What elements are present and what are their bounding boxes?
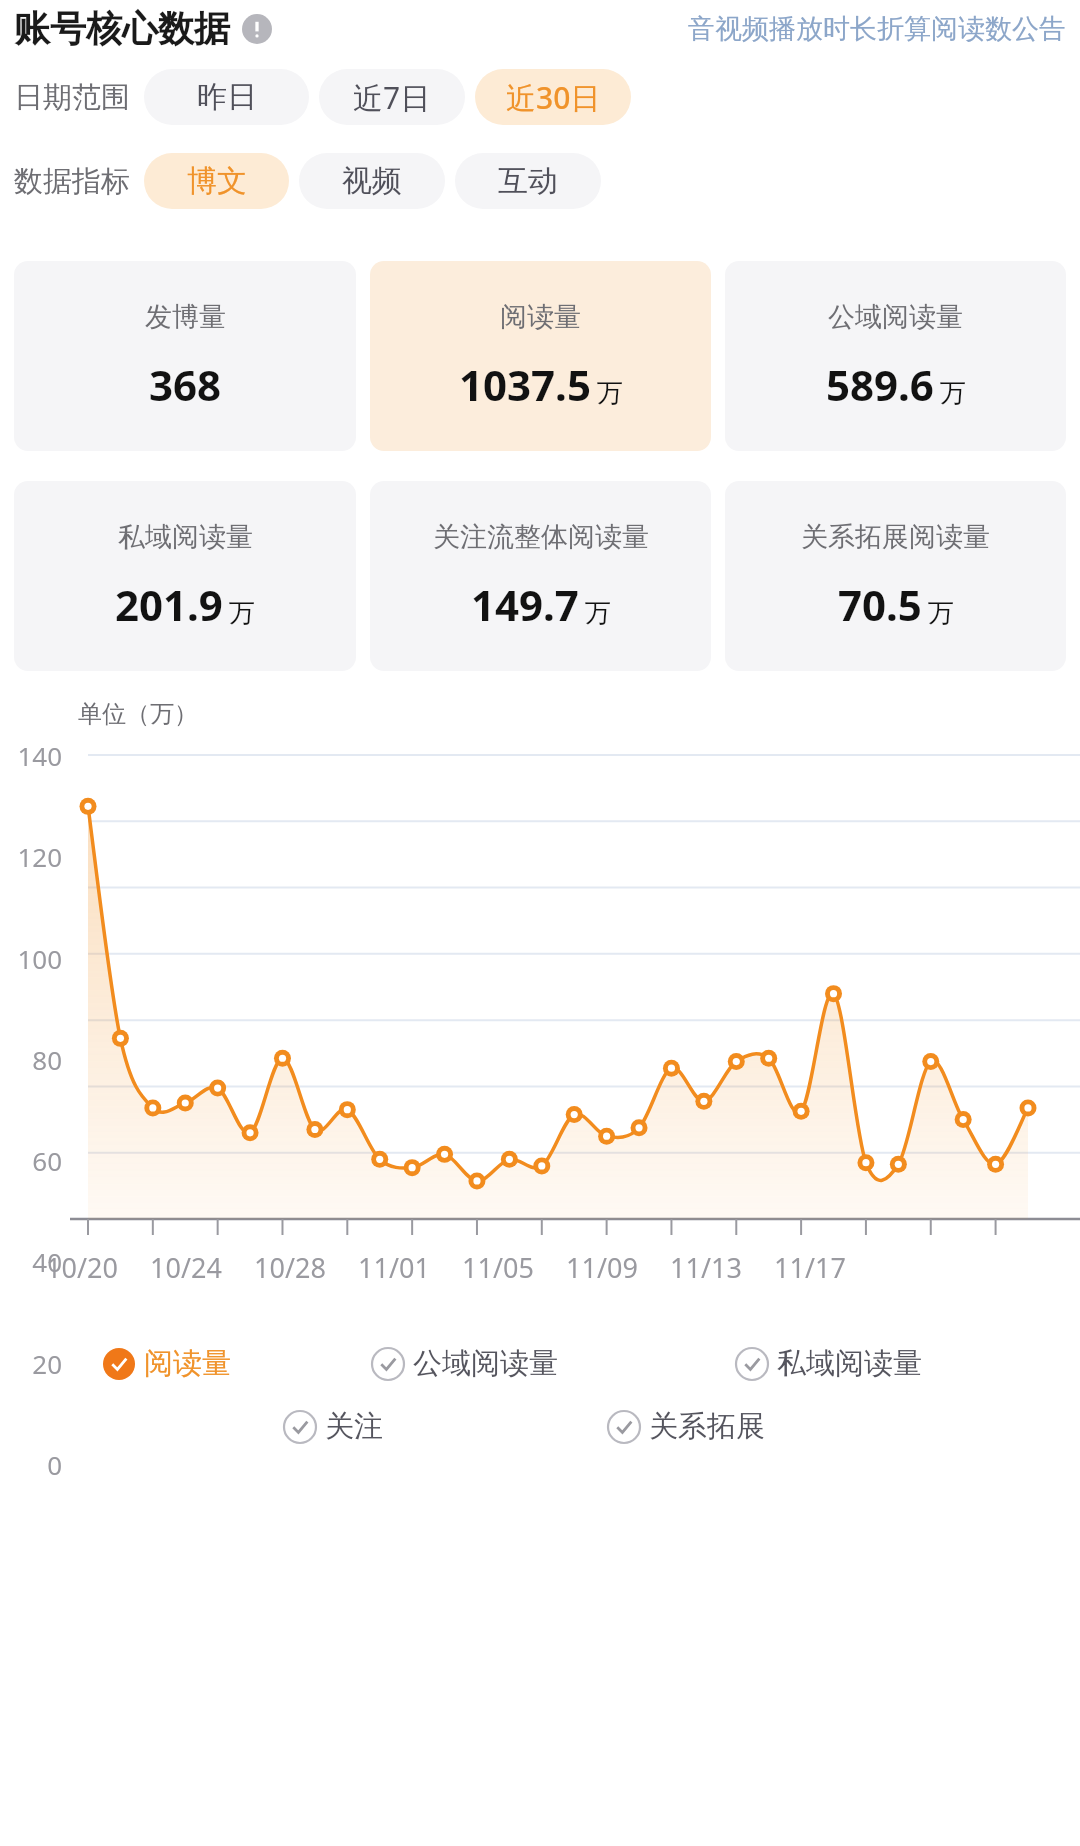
staticText: 11/13 [654, 1249, 758, 1286]
button[interactable]: 私域阅读量 [735, 1345, 1066, 1382]
button[interactable]: 关系拓展阅读量 [725, 481, 1066, 671]
staticText: 关注流整体阅读量 [433, 520, 649, 554]
staticText: 私域阅读量 [777, 1345, 922, 1382]
staticText: 日期范围 [14, 79, 130, 116]
staticText: 数据指标 [14, 163, 130, 200]
staticText: 私域阅读量 [118, 520, 253, 554]
staticText: 11/01 [342, 1249, 446, 1286]
staticText: 关系拓展阅读量 [801, 520, 990, 554]
staticText: 70.5 [838, 576, 922, 633]
staticText: 60 [0, 1143, 62, 1178]
button[interactable]: 公域阅读量 [371, 1345, 735, 1382]
staticText: 100 [0, 941, 62, 976]
staticText: 公域阅读量 [828, 300, 963, 334]
button[interactable]: 音视频播放时长折算阅读数公告 [688, 12, 1066, 46]
staticText: 阅读量 [144, 1345, 231, 1382]
staticText: 视频 [342, 162, 402, 200]
button[interactable]: 关注 [283, 1408, 607, 1445]
staticText: 10/20 [30, 1249, 134, 1286]
button[interactable]: 近7日 [319, 69, 465, 125]
staticText: 万 [597, 377, 623, 410]
staticText: 368 [149, 356, 222, 413]
staticText: 120 [0, 839, 62, 874]
staticText: 近7日 [353, 77, 431, 118]
staticText: 万 [940, 377, 966, 410]
staticText: 10/24 [134, 1249, 238, 1286]
staticText: 140 [0, 738, 62, 773]
button[interactable]: 私域阅读量 [14, 481, 356, 671]
staticText: 10/28 [238, 1249, 342, 1286]
staticText: 149.7 [471, 576, 579, 633]
staticText: 1037.5 [459, 356, 591, 413]
button[interactable]: 阅读量 [14, 1345, 371, 1382]
staticText: 11/17 [758, 1249, 862, 1286]
staticText: 万 [928, 597, 954, 630]
staticText: 40 [0, 1244, 62, 1279]
staticText: 80 [0, 1042, 62, 1077]
button[interactable]: 昨日 [144, 69, 309, 125]
staticText: 关系拓展 [649, 1408, 765, 1445]
button[interactable]: 关注流整体阅读量 [370, 481, 711, 671]
staticText: 0 [0, 1447, 62, 1482]
staticText: 11/05 [446, 1249, 550, 1286]
staticText: 发博量 [145, 300, 226, 334]
button[interactable]: 阅读量 [370, 261, 711, 451]
staticText: 万 [585, 597, 611, 630]
staticText: 互动 [498, 162, 558, 200]
staticText: 昨日 [197, 78, 257, 116]
staticText: 11/09 [550, 1249, 654, 1286]
staticText: 单位（万） [78, 699, 198, 729]
staticText: 20 [0, 1346, 62, 1381]
staticText: 近30日 [506, 77, 601, 118]
staticText: 博文 [187, 162, 247, 200]
button[interactable]: 近30日 [475, 69, 631, 125]
button[interactable]: 公域阅读量 [725, 261, 1066, 451]
button[interactable]: 关系拓展 [607, 1408, 931, 1445]
button[interactable]: 视频 [299, 153, 445, 209]
staticText: 公域阅读量 [413, 1345, 558, 1382]
button[interactable]: 发博量 [14, 261, 356, 451]
button[interactable]: 互动 [455, 153, 601, 209]
staticText: 关注 [325, 1408, 383, 1445]
button[interactable]: 博文 [144, 153, 289, 209]
staticText: 万 [229, 597, 255, 630]
staticText: 阅读量 [500, 300, 581, 334]
button[interactable]: 说明 [242, 14, 272, 44]
staticText: 589.6 [826, 356, 934, 413]
staticText: 201.9 [115, 576, 223, 633]
staticText: 账号核心数据 [14, 6, 230, 51]
